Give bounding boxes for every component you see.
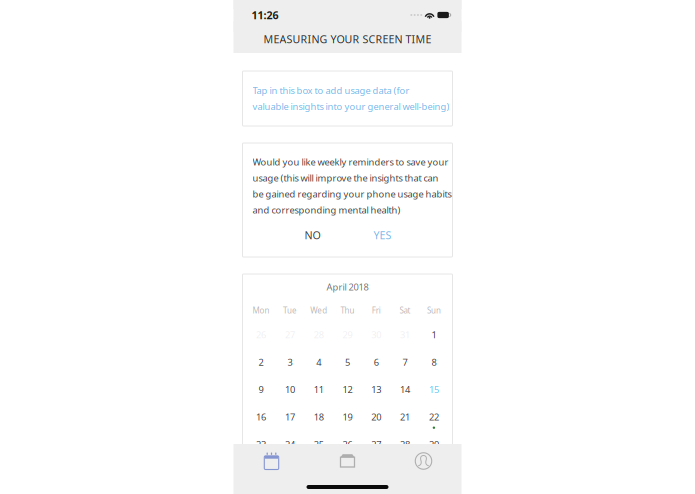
button[interactable]: Usage <box>309 445 385 477</box>
staticText: 1 <box>431 328 436 341</box>
staticText: 27 <box>285 328 295 341</box>
staticText: 13 <box>371 383 381 396</box>
staticText: 26 <box>256 328 266 341</box>
staticText: 9 <box>259 383 264 396</box>
staticText: 28 <box>400 438 410 450</box>
staticText: April 2018 <box>326 281 368 293</box>
staticText: 25 <box>314 438 324 450</box>
staticText: 10 <box>285 383 295 396</box>
staticText: 29 <box>342 328 352 341</box>
staticText: 18 <box>314 411 324 423</box>
staticText: YES <box>373 228 391 242</box>
staticText: 28 <box>314 328 324 341</box>
staticText: Tue <box>283 305 297 316</box>
staticText: 24 <box>285 438 295 450</box>
staticText: Tap in this box to add usage data (for <box>252 84 409 97</box>
staticText: 27 <box>371 438 381 450</box>
staticText: 5 <box>345 356 350 368</box>
staticText: 23 <box>256 438 266 450</box>
staticText: 16 <box>256 411 266 423</box>
staticText: NO <box>304 228 320 242</box>
button[interactable]: Tap in this box to add usage data (for <box>242 71 452 126</box>
button[interactable]: Profile <box>385 445 461 477</box>
staticText: 17 <box>285 411 295 423</box>
staticText: 15 <box>429 383 439 396</box>
staticText: valuable insights into your general well… <box>252 100 449 113</box>
staticText: 12 <box>342 383 352 396</box>
staticText: 30 <box>371 328 381 341</box>
staticText: Wed <box>310 305 327 316</box>
staticText: 8 <box>431 356 436 368</box>
button[interactable]: YES <box>347 225 417 245</box>
staticText: 26 <box>342 438 352 450</box>
staticText: 21 <box>400 411 410 423</box>
staticText: 3 <box>287 356 292 368</box>
staticText: and corresponding mental health) <box>252 204 400 216</box>
staticText: usage (this will improve the insights th… <box>252 172 438 184</box>
staticText: 7 <box>403 356 408 368</box>
staticText: Mon <box>253 305 270 316</box>
staticText: 11 <box>314 383 324 396</box>
button[interactable]: Calendar <box>233 445 309 477</box>
staticText: 22 <box>429 411 439 423</box>
staticText: Thu <box>340 305 354 316</box>
staticText: Sun <box>427 305 441 316</box>
staticText: Fri <box>372 305 381 316</box>
button[interactable]: NO <box>277 225 347 245</box>
staticText: 6 <box>374 356 379 368</box>
staticText: 14 <box>400 383 410 396</box>
staticText: 29 <box>429 438 439 450</box>
staticText: 31 <box>400 328 410 341</box>
staticText: Would you like weekly reminders to save … <box>252 156 448 168</box>
staticText: 2 <box>259 356 264 368</box>
staticText: 20 <box>371 411 381 423</box>
staticText: MEASURING YOUR SCREEN TIME <box>263 32 431 46</box>
staticText: 11:26 <box>251 8 278 22</box>
staticText: Sat <box>400 305 411 316</box>
staticText: 19 <box>342 411 352 423</box>
staticText: 4 <box>316 356 321 368</box>
staticText: be gained regarding your phone usage hab… <box>252 188 451 200</box>
